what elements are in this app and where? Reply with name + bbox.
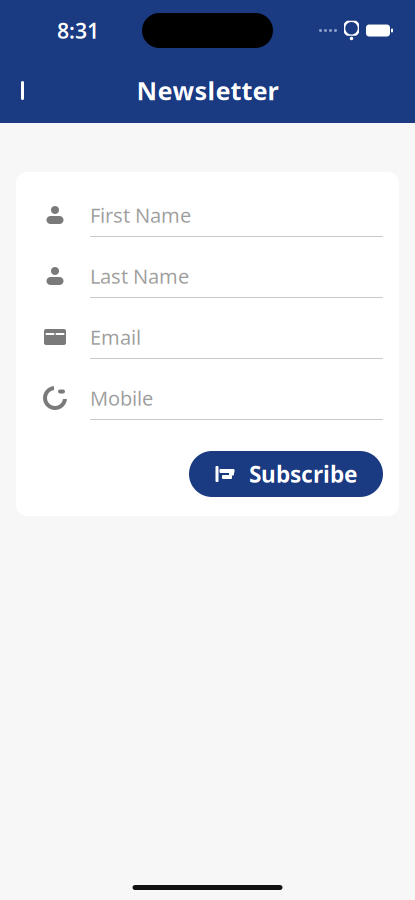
staticText: Mobile xyxy=(90,385,153,411)
staticText: Email xyxy=(90,324,141,350)
button[interactable]: Subscribe xyxy=(189,451,383,497)
staticText: 8:31 xyxy=(57,16,99,45)
button[interactable]: Back xyxy=(2,68,46,112)
staticText: First Name xyxy=(90,202,191,228)
staticText: Subscribe xyxy=(249,459,358,489)
staticText: Newsletter xyxy=(136,74,278,107)
staticText: Last Name xyxy=(90,263,189,289)
